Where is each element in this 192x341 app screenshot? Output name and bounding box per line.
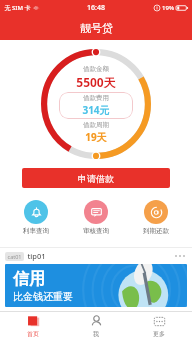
- button[interactable]: 信用: [5, 264, 187, 307]
- button[interactable]: 利率查询: [8, 198, 64, 237]
- button[interactable]: More: [173, 253, 187, 259]
- staticText: 5500天: [76, 74, 116, 90]
- staticText: 314元: [82, 103, 110, 117]
- button[interactable]: 首页: [3, 311, 63, 341]
- button[interactable]: 审核查询: [68, 198, 124, 237]
- staticText: 19%: [162, 4, 174, 12]
- staticText: 借款周期: [83, 121, 109, 129]
- staticText: cat01: [7, 253, 22, 260]
- staticText: 首页: [27, 330, 39, 338]
- button[interactable]: 我: [66, 311, 126, 341]
- staticText: 借款费用: [83, 94, 109, 102]
- staticText: 比金钱还重要: [13, 290, 73, 303]
- staticText: 无 SIM 卡: [4, 4, 31, 12]
- staticText: 更多: [153, 330, 165, 338]
- staticText: 借款金额: [83, 65, 109, 73]
- staticText: tip01: [27, 251, 46, 261]
- button[interactable]: 到期还款: [128, 198, 184, 237]
- staticText: 我: [93, 330, 99, 338]
- button[interactable]: 更多: [129, 311, 189, 341]
- staticText: 信用: [13, 269, 45, 289]
- button[interactable]: 申请借款: [22, 168, 170, 188]
- staticText: 16:48: [87, 3, 105, 13]
- staticText: 申请借款: [78, 173, 114, 184]
- staticText: 19天: [85, 130, 107, 144]
- staticText: 靓号贷: [80, 21, 113, 35]
- staticText: 审核查询: [83, 227, 109, 235]
- staticText: 到期还款: [143, 227, 169, 235]
- staticText: 利率查询: [23, 227, 49, 235]
